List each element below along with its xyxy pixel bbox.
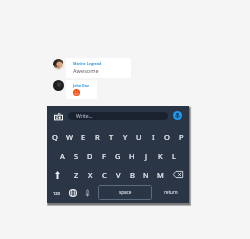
button[interactable]: E bbox=[76, 130, 90, 144]
staticText: T bbox=[109, 132, 114, 142]
button[interactable]: T bbox=[104, 130, 118, 144]
button[interactable]: Y bbox=[118, 130, 132, 144]
button[interactable]: Write... bbox=[68, 112, 168, 120]
button[interactable]: 123 bbox=[50, 187, 63, 199]
button[interactable]: Backspace bbox=[173, 171, 183, 178]
button[interactable]: Z bbox=[69, 168, 83, 182]
staticText: C bbox=[102, 170, 107, 180]
staticText: John Doe bbox=[73, 83, 90, 88]
button[interactable]: K bbox=[153, 149, 167, 163]
button[interactable]: A bbox=[55, 149, 69, 163]
button[interactable]: Q bbox=[48, 130, 62, 144]
staticText: S bbox=[74, 151, 79, 161]
staticText: X bbox=[88, 170, 93, 180]
staticText: F bbox=[102, 151, 106, 161]
button[interactable]: Shift bbox=[55, 171, 60, 179]
button[interactable]: John Doe bbox=[66, 80, 97, 99]
staticText: I bbox=[152, 132, 155, 142]
button[interactable]: Voice message bbox=[173, 111, 182, 120]
button[interactable]: N bbox=[139, 168, 153, 182]
button[interactable]: V bbox=[111, 168, 125, 182]
staticText: K bbox=[158, 151, 163, 161]
staticText: 123 bbox=[53, 191, 60, 196]
button[interactable]: Voice input bbox=[85, 189, 90, 197]
button[interactable]: I bbox=[146, 130, 160, 144]
staticText: L bbox=[172, 151, 176, 161]
staticText: E bbox=[81, 132, 86, 142]
button[interactable]: H bbox=[125, 149, 139, 163]
staticText: O bbox=[164, 132, 170, 142]
staticText: B bbox=[130, 170, 135, 180]
staticText: V bbox=[116, 170, 121, 180]
staticText: U bbox=[136, 132, 142, 142]
staticText: Write... bbox=[76, 113, 93, 120]
staticText: D bbox=[87, 151, 93, 161]
button[interactable]: B bbox=[125, 168, 139, 182]
button[interactable]: F bbox=[97, 149, 111, 163]
button[interactable]: L bbox=[167, 149, 181, 163]
button[interactable]: G bbox=[111, 149, 125, 163]
staticText: Q bbox=[52, 132, 58, 142]
staticText: A bbox=[60, 151, 65, 161]
button[interactable]: M bbox=[153, 168, 167, 182]
staticText: Y bbox=[123, 132, 128, 142]
button[interactable]: Change language bbox=[69, 189, 77, 197]
staticText: W bbox=[66, 132, 73, 142]
button[interactable]: R bbox=[90, 130, 104, 144]
button[interactable]: return bbox=[160, 186, 182, 198]
staticText: H bbox=[129, 151, 135, 161]
staticText: N bbox=[143, 170, 149, 180]
button[interactable]: Camera bbox=[54, 113, 63, 121]
staticText: R bbox=[95, 132, 100, 142]
button[interactable]: U bbox=[132, 130, 146, 144]
staticText: return bbox=[164, 189, 178, 195]
button[interactable]: W bbox=[62, 130, 76, 144]
staticText: P bbox=[179, 132, 184, 142]
staticText: M bbox=[157, 170, 164, 180]
staticText: Z bbox=[74, 170, 79, 180]
button[interactable]: J bbox=[139, 149, 153, 163]
button[interactable]: O bbox=[160, 130, 174, 144]
button[interactable]: S bbox=[69, 149, 83, 163]
button[interactable]: P bbox=[174, 130, 188, 144]
staticText: G bbox=[115, 151, 121, 161]
staticText: Awesome bbox=[73, 67, 99, 75]
button[interactable]: D bbox=[83, 149, 97, 163]
button[interactable]: C bbox=[97, 168, 111, 182]
button[interactable]: space bbox=[98, 185, 152, 200]
staticText: space bbox=[119, 189, 132, 195]
button[interactable]: Marine Legrand bbox=[66, 58, 131, 78]
staticText: Marine Legrand bbox=[73, 61, 102, 66]
button[interactable]: X bbox=[83, 168, 97, 182]
staticText: J bbox=[145, 151, 148, 161]
